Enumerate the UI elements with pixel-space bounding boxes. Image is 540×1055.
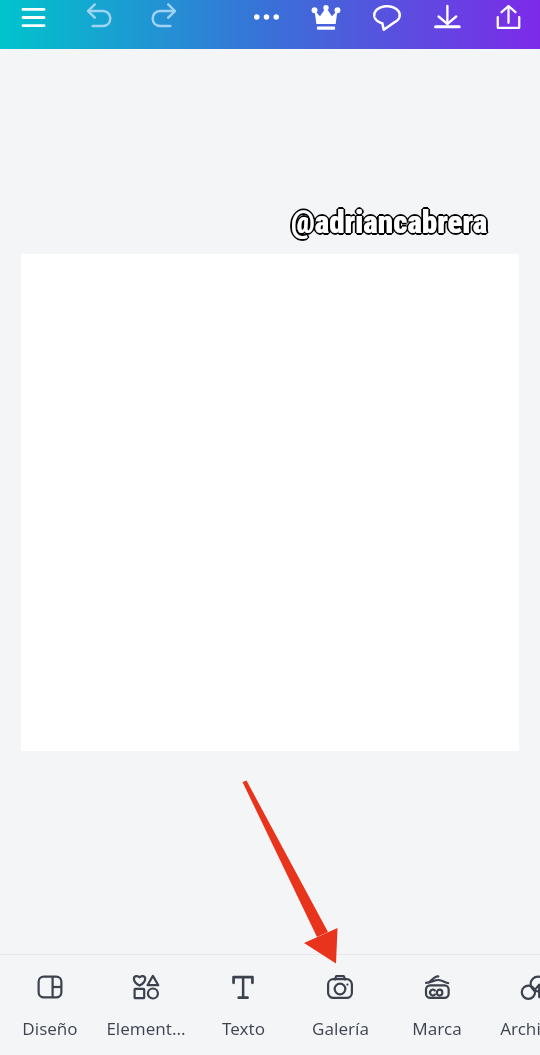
button[interactable]: Download [423,0,471,49]
staticText: @adriancabrera [291,206,488,242]
button[interactable]: Marca [389,954,485,1055]
button[interactable]: Galería [292,954,388,1055]
button[interactable]: Menu [9,0,57,49]
staticText: Diseño [22,1017,78,1040]
staticText: @adriancabrera [291,202,488,238]
button[interactable]: Premium [302,0,350,49]
staticText: @adriancabrera [293,204,490,240]
staticText: @adriancabrera [290,203,487,239]
button[interactable]: Element... [98,954,194,1055]
staticText: @adriancabrera [289,204,486,240]
staticText: @adriancabrera [290,205,487,241]
button[interactable]: Share [484,0,532,49]
button[interactable]: Texto [195,954,291,1055]
button[interactable]: Comments [363,0,411,49]
staticText: Texto [222,1017,265,1040]
staticText: @adriancabrera [291,204,488,240]
staticText: @adriancabrera [292,205,489,241]
button[interactable]: Diseño [2,954,98,1055]
button[interactable]: Redo [139,0,187,49]
staticText: Galería [312,1017,369,1040]
staticText: Marca [412,1017,462,1040]
staticText: Archivos [500,1017,540,1040]
staticText: Element... [106,1017,186,1040]
button[interactable]: Undo [76,0,124,49]
button[interactable]: More options [242,0,290,49]
staticText: @adriancabrera [292,203,489,239]
button[interactable]: Archivos [486,954,540,1055]
